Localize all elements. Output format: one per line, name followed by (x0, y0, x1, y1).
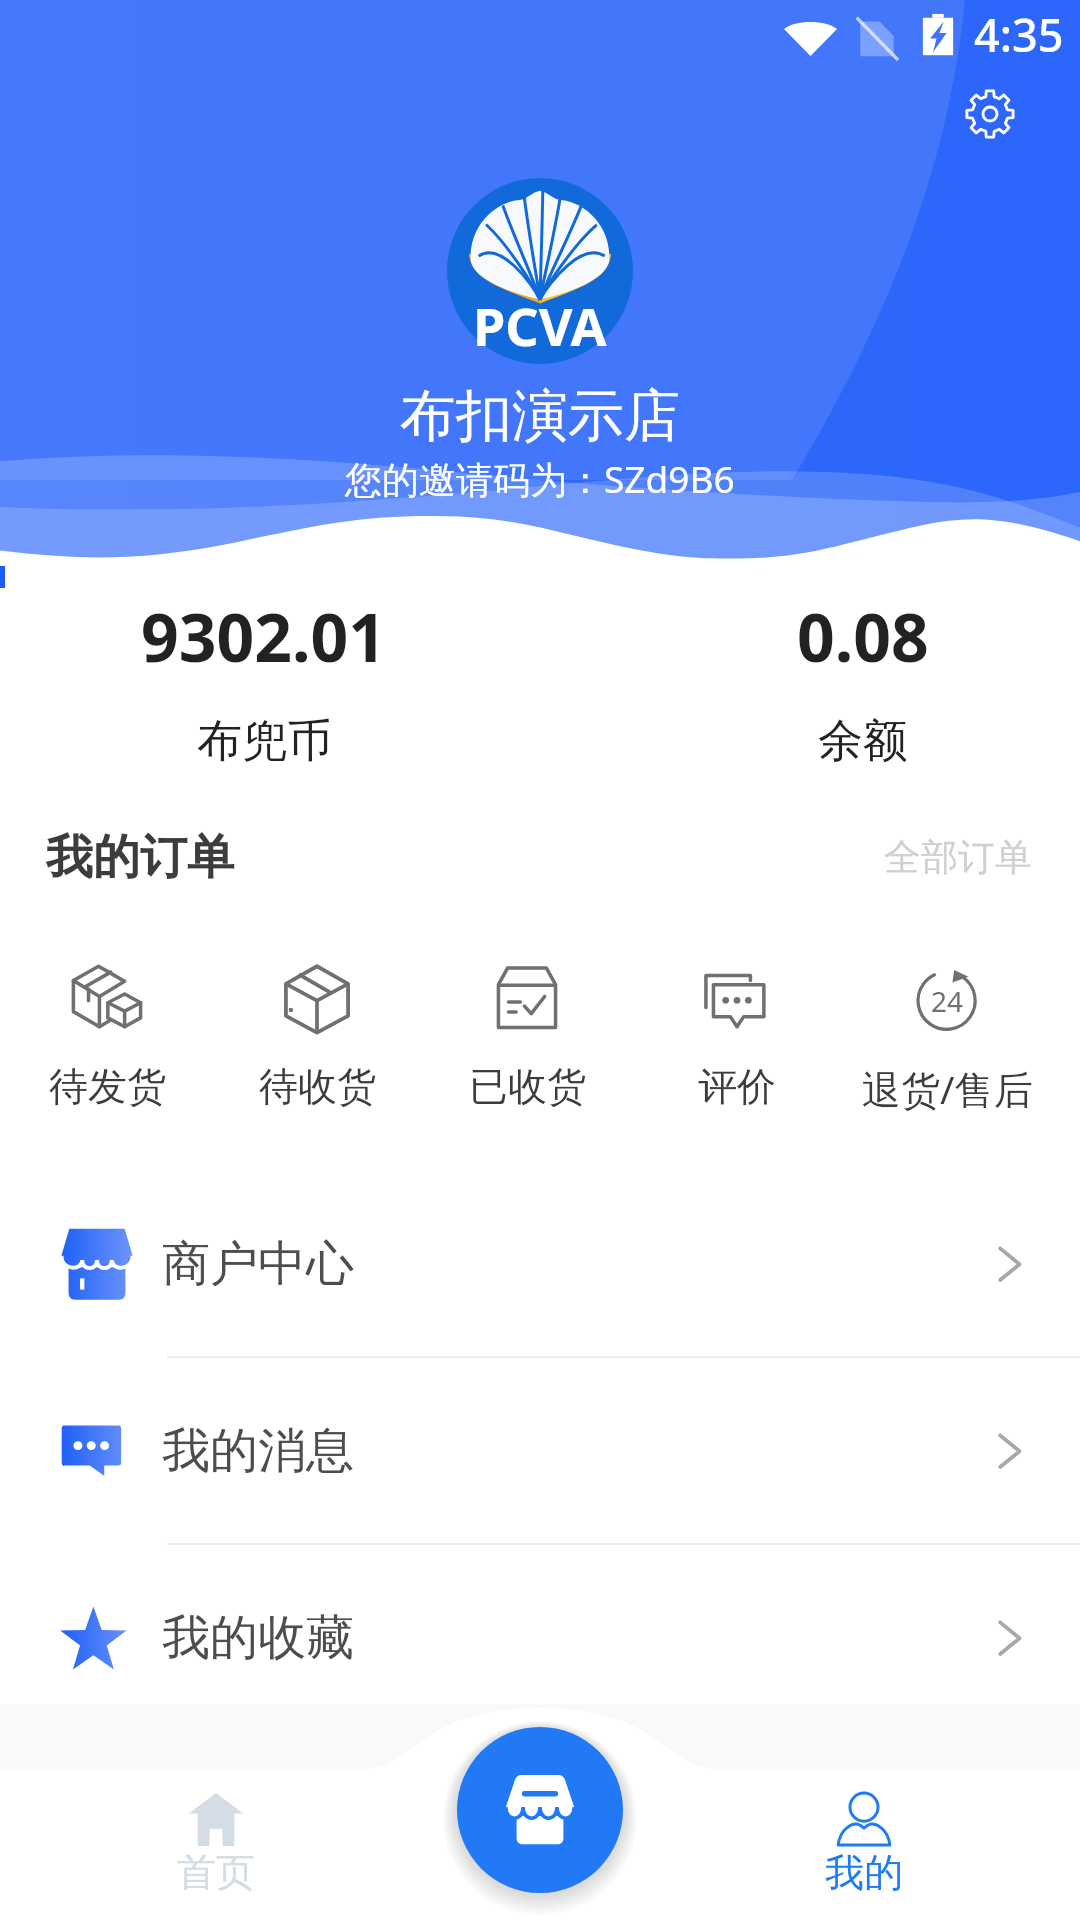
button[interactable]: 已收货 (422, 957, 632, 1111)
button[interactable]: 评价 (632, 957, 842, 1111)
staticText: 我的消息 (162, 1421, 354, 1481)
staticText: 您的邀请码为：SZd9B6 (345, 453, 735, 504)
button[interactable]: 首页 (130, 1792, 302, 1897)
staticText: 4:35 (974, 4, 1064, 65)
button[interactable]: 我的 (778, 1792, 950, 1897)
button[interactable]: 0.08 (747, 591, 979, 770)
staticText: 待发货 (49, 1062, 166, 1111)
staticText: 全部订单 (884, 834, 1032, 881)
button[interactable]: 我的消息 (0, 1358, 1080, 1543)
staticText: 0.08 (797, 591, 929, 681)
button[interactable]: 全部订单 (884, 834, 1032, 881)
button[interactable]: 待收货 (212, 957, 422, 1111)
button[interactable]: 我的收藏 (0, 1545, 1080, 1730)
button[interactable]: Settings (964, 88, 1016, 140)
staticText: 余额 (818, 713, 908, 770)
staticText: 评价 (698, 1062, 776, 1111)
button[interactable]: 商户中心 (0, 1171, 1080, 1356)
staticText: 待收货 (259, 1062, 376, 1111)
button[interactable]: 待发货 (2, 957, 212, 1111)
button[interactable]: 9302.01 (40, 591, 488, 770)
staticText: 退货/售后 (862, 1062, 1033, 1115)
button[interactable]: Store (457, 1727, 623, 1893)
staticText: 布兜币 (197, 713, 332, 770)
staticText: 9302.01 (141, 591, 387, 681)
staticText: 我的收藏 (162, 1608, 354, 1668)
staticText: 布扣演示店 (400, 381, 680, 452)
staticText: 我的 (825, 1848, 903, 1897)
staticText: 24 (931, 982, 964, 1020)
staticText: 我的订单 (46, 828, 234, 887)
staticText: 首页 (177, 1848, 255, 1897)
staticText: 已收货 (469, 1062, 586, 1111)
staticText: 商户中心 (162, 1234, 354, 1294)
button[interactable]: 24 (842, 957, 1052, 1115)
staticText: PCVA (473, 290, 607, 361)
